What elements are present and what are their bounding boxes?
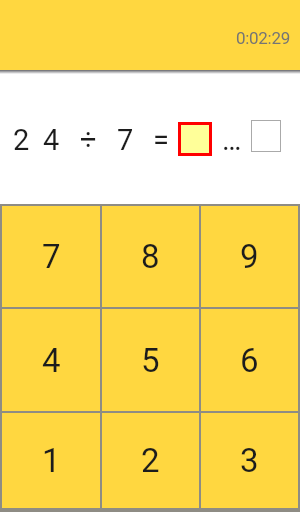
staticText: … (222, 123, 242, 157)
staticText: 2 (141, 441, 160, 480)
staticText: 8 (141, 237, 160, 276)
staticText: = (153, 123, 169, 157)
button[interactable]: 4 (2, 309, 100, 411)
staticText: 4 (43, 123, 60, 157)
button[interactable]: 3 (201, 413, 298, 508)
button[interactable]: 1 (2, 413, 100, 508)
button[interactable]: 6 (201, 309, 298, 411)
staticText: 1 (42, 441, 61, 480)
button[interactable]: 7 (2, 206, 100, 307)
staticText: 0:02:29 (236, 28, 290, 48)
staticText: 9 (240, 237, 259, 276)
button[interactable]: 9 (201, 206, 298, 307)
button[interactable]: 2 (102, 413, 199, 508)
staticText: 5 (141, 341, 160, 380)
button[interactable]: 8 (102, 206, 199, 307)
staticText: 2 (13, 123, 30, 157)
staticText: 6 (240, 341, 259, 380)
button[interactable] (251, 120, 281, 152)
staticText: 7 (42, 237, 61, 276)
staticText: 4 (42, 341, 61, 380)
staticText: 7 (117, 123, 134, 157)
staticText: ÷ (80, 123, 97, 157)
button[interactable]: 5 (102, 309, 199, 411)
button[interactable] (178, 122, 212, 156)
staticText: 3 (240, 441, 259, 480)
